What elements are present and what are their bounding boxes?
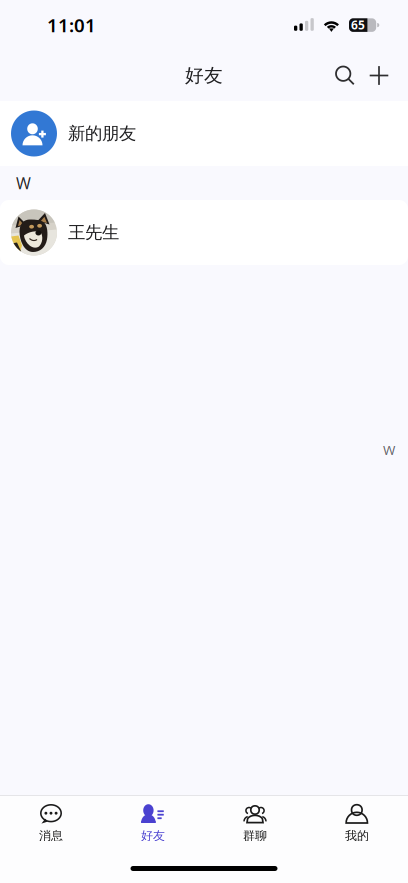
button[interactable]: 好友 — [102, 796, 204, 841]
button[interactable]: 新的朋友 — [0, 101, 408, 166]
staticText: 王先生 — [68, 222, 119, 243]
button[interactable]: 消息 — [0, 796, 102, 841]
button[interactable]: 添加 — [360, 56, 398, 94]
button[interactable]: 王先生 — [0, 200, 408, 265]
button[interactable]: 我的 — [306, 796, 408, 841]
staticText: W — [383, 441, 395, 459]
staticText: 消息 — [39, 828, 63, 843]
staticText: W — [16, 172, 31, 194]
staticText: 我的 — [345, 828, 369, 843]
staticText: 好友 — [185, 64, 223, 87]
button[interactable]: 群聊 — [204, 796, 306, 841]
staticText: 群聊 — [243, 828, 267, 843]
staticText: 11:01 — [47, 13, 96, 37]
staticText: 65 — [351, 17, 365, 33]
button[interactable]: 搜索 — [326, 56, 364, 94]
staticText: 新的朋友 — [68, 123, 136, 144]
staticText: 好友 — [141, 828, 165, 843]
